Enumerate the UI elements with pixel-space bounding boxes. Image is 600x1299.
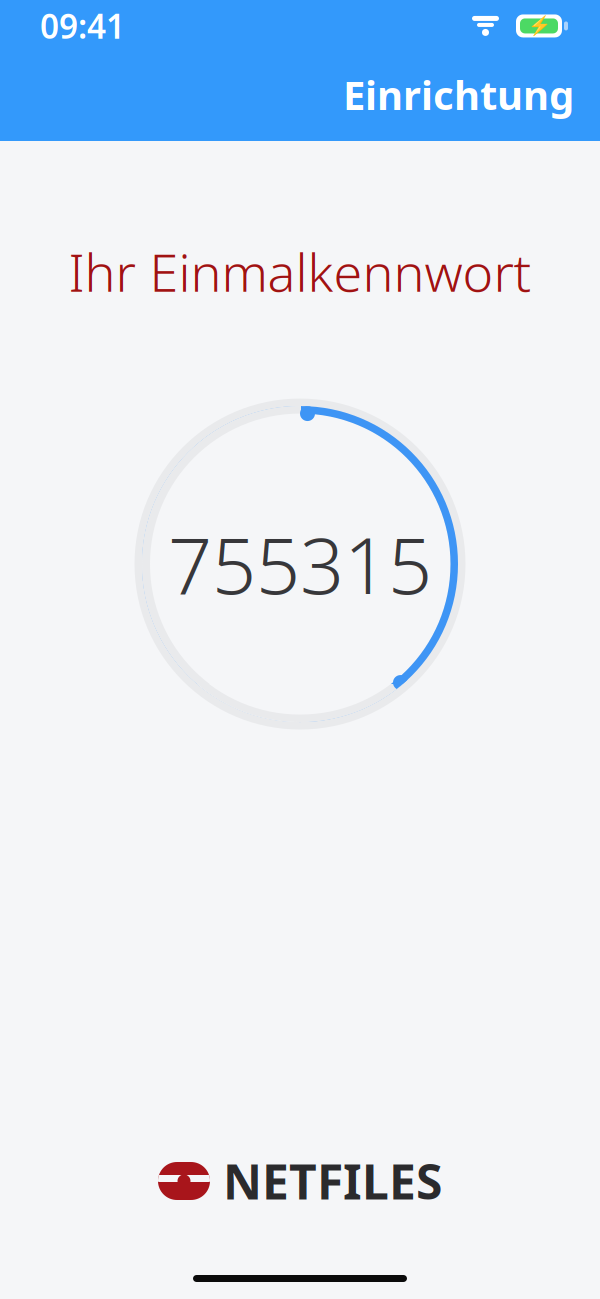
- button[interactable]: Einrichtung: [0, 63, 600, 126]
- staticText: Ihr Einmalkennwort: [68, 237, 531, 306]
- staticText: 09:41: [40, 4, 125, 48]
- staticText: 755315: [168, 513, 432, 615]
- staticText: ⚡: [527, 15, 550, 37]
- staticText: NETFILES: [223, 1149, 442, 1213]
- staticText: Einrichtung: [343, 68, 574, 121]
